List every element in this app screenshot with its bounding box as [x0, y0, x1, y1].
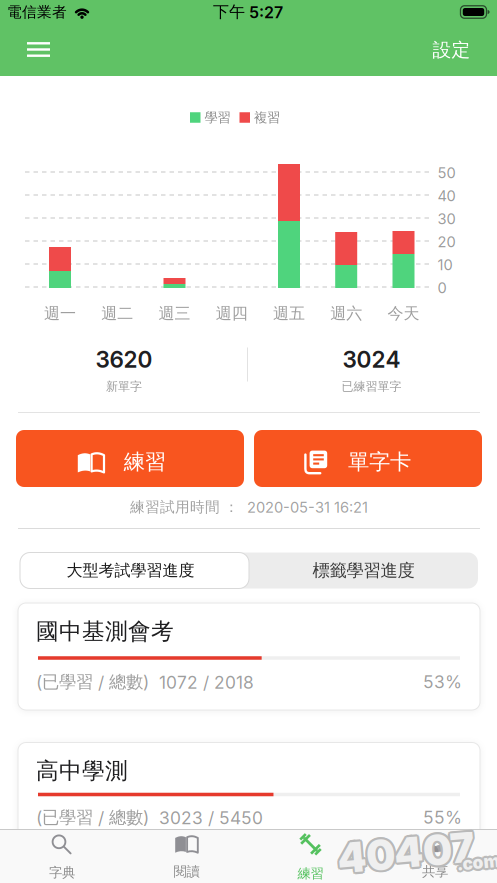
- staticText: 40407: [339, 826, 476, 875]
- staticText: 練習試用時間 ： 2020-05-31 16:21: [130, 498, 368, 516]
- staticText: .com: [458, 854, 497, 874]
- button[interactable]: 閱讀: [131, 830, 241, 883]
- staticText: .com: [455, 851, 497, 871]
- staticText: 40407: [337, 830, 474, 879]
- staticText: 字典: [49, 864, 75, 881]
- staticText: 複習: [254, 109, 280, 126]
- staticText: 40407: [339, 830, 476, 878]
- button[interactable]: 共享: [380, 830, 490, 883]
- staticText: 設定: [432, 38, 470, 61]
- staticText: .com: [454, 852, 497, 873]
- staticText: (已學習 / 總數) 1072 / 2018: [36, 671, 254, 693]
- staticText: 已練習單字: [341, 379, 401, 394]
- staticText: 3620: [95, 346, 152, 373]
- staticText: 40407: [335, 828, 472, 877]
- staticText: 週四: [216, 304, 248, 323]
- staticText: 標籤學習進度: [312, 560, 414, 581]
- staticText: 30: [437, 210, 455, 228]
- button[interactable]: 單字卡: [254, 430, 482, 487]
- staticText: 練習: [124, 449, 166, 475]
- staticText: 練習: [297, 865, 323, 882]
- button[interactable]: 大型考試學習進度: [20, 552, 249, 588]
- staticText: 今天: [387, 304, 419, 323]
- staticText: 下午 5:27: [213, 2, 283, 22]
- button[interactable]: [18, 742, 480, 849]
- staticText: .com: [458, 851, 497, 871]
- button[interactable]: 標籤學習進度: [263, 552, 463, 588]
- button[interactable]: 練習: [255, 830, 365, 883]
- staticText: 高中學測: [36, 757, 128, 785]
- staticText: .com: [455, 854, 497, 874]
- staticText: 40407: [340, 828, 477, 877]
- staticText: 週二: [101, 304, 133, 323]
- staticText: .com: [459, 852, 497, 873]
- staticText: 40407: [337, 828, 474, 877]
- staticText: 40407: [337, 826, 474, 875]
- button[interactable]: [18, 603, 480, 710]
- staticText: .com: [456, 852, 497, 873]
- staticText: 55%: [423, 807, 462, 828]
- staticText: .com: [456, 854, 497, 875]
- staticText: 週三: [158, 304, 190, 323]
- staticText: 共享: [422, 863, 448, 880]
- staticText: 學習: [204, 109, 230, 126]
- staticText: 新單字: [106, 379, 142, 394]
- staticText: (已學習 / 總數) 3023 / 5450: [36, 807, 263, 828]
- staticText: 週六: [330, 304, 362, 323]
- staticText: 單字卡: [348, 449, 411, 475]
- staticText: 大型考試學習進度: [66, 561, 194, 580]
- staticText: 國中基測會考: [36, 618, 174, 645]
- staticText: 週一: [44, 304, 76, 323]
- staticText: .com: [456, 850, 497, 870]
- button[interactable]: [16, 29, 60, 69]
- staticText: 0: [437, 279, 446, 297]
- button[interactable]: 字典: [7, 830, 117, 883]
- staticText: 20: [437, 233, 455, 251]
- button[interactable]: 設定: [421, 30, 481, 70]
- staticText: 週五: [273, 304, 305, 323]
- staticText: 電信業者: [7, 3, 67, 21]
- staticText: 40: [437, 187, 455, 205]
- staticText: 50: [437, 164, 455, 182]
- staticText: 閱讀: [173, 863, 199, 880]
- staticText: 53%: [423, 672, 462, 692]
- button[interactable]: 練習: [16, 430, 244, 487]
- staticText: 3024: [342, 346, 400, 373]
- staticText: 40407: [336, 830, 473, 878]
- staticText: 10: [437, 256, 452, 274]
- staticText: 40407: [336, 826, 473, 875]
